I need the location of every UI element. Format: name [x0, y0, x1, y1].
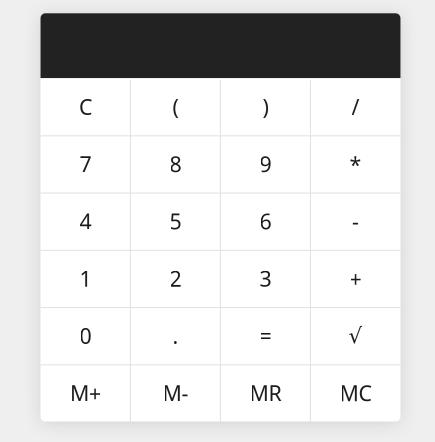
- button[interactable]: M+: [40, 364, 130, 421]
- button[interactable]: .: [130, 307, 220, 364]
- button[interactable]: 0: [40, 307, 130, 364]
- staticText: 3: [259, 264, 271, 293]
- staticText: M+: [70, 379, 101, 407]
- button[interactable]: /: [310, 78, 400, 135]
- staticText: (: [172, 92, 178, 121]
- button[interactable]: 7: [40, 135, 130, 192]
- staticText: C: [79, 92, 92, 121]
- button[interactable]: ): [220, 78, 310, 135]
- button[interactable]: (: [130, 78, 220, 135]
- button[interactable]: MR: [220, 364, 310, 421]
- button[interactable]: 1: [40, 250, 130, 307]
- button[interactable]: 9: [220, 135, 310, 192]
- button[interactable]: MC: [310, 364, 400, 421]
- staticText: -: [352, 207, 359, 235]
- staticText: 9: [259, 150, 271, 178]
- staticText: 8: [169, 150, 181, 178]
- button[interactable]: 3: [220, 250, 310, 307]
- button[interactable]: 2: [130, 250, 220, 307]
- button[interactable]: 4: [40, 193, 130, 250]
- button[interactable]: C: [40, 78, 130, 135]
- staticText: 1: [79, 264, 91, 293]
- staticText: 5: [169, 207, 181, 235]
- staticText: *: [349, 150, 361, 178]
- staticText: .: [172, 321, 178, 350]
- button[interactable]: =: [220, 307, 310, 364]
- staticText: +: [349, 264, 361, 293]
- staticText: 0: [79, 321, 91, 350]
- button[interactable]: *: [310, 135, 400, 192]
- staticText: M-: [162, 379, 188, 407]
- staticText: =: [259, 321, 271, 350]
- staticText: 4: [79, 207, 91, 235]
- staticText: MC: [339, 379, 371, 407]
- button[interactable]: 8: [130, 135, 220, 192]
- staticText: 2: [169, 264, 181, 293]
- staticText: MR: [249, 379, 281, 407]
- button[interactable]: √: [310, 307, 400, 364]
- staticText: ): [262, 92, 268, 121]
- button[interactable]: 6: [220, 193, 310, 250]
- staticText: 7: [79, 150, 91, 178]
- button[interactable]: +: [310, 250, 400, 307]
- button[interactable]: 5: [130, 193, 220, 250]
- button[interactable]: -: [310, 193, 400, 250]
- staticText: /: [351, 92, 359, 121]
- button[interactable]: M-: [130, 364, 220, 421]
- staticText: 6: [259, 207, 271, 235]
- staticText: √: [348, 324, 362, 348]
